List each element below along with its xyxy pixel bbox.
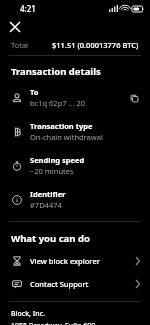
staticText: Identifier bbox=[30, 189, 66, 199]
button[interactable]: Transaction type bbox=[0, 118, 150, 145]
staticText: $11.51 (0.00013776 BTC) bbox=[52, 40, 139, 50]
staticText: Transaction details bbox=[11, 65, 101, 78]
staticText: Block, Inc. bbox=[11, 309, 46, 319]
staticText: bc1q 62p7 ... 20 bbox=[30, 98, 86, 108]
staticText: 4:21 bbox=[20, 3, 36, 14]
button[interactable]: View block explorer bbox=[0, 249, 150, 272]
button[interactable]: Close bbox=[5, 17, 25, 37]
staticText: ~20 minutes bbox=[30, 166, 74, 176]
staticText: Contact Support bbox=[30, 279, 89, 289]
button[interactable]: To bbox=[0, 84, 150, 111]
staticText: Total bbox=[11, 40, 29, 50]
staticText: Transaction type bbox=[30, 121, 93, 131]
staticText: To bbox=[30, 87, 39, 97]
button[interactable]: Sending speed bbox=[0, 152, 150, 179]
staticText: On-chain withdrawal bbox=[30, 132, 103, 142]
button[interactable]: Copy bbox=[127, 91, 141, 105]
staticText: Sending speed bbox=[30, 155, 85, 165]
staticText: #7D4474 bbox=[30, 200, 62, 210]
button[interactable]: Identifier bbox=[0, 186, 150, 213]
staticText: 1955 Broadway, Suite 600 bbox=[11, 321, 96, 325]
staticText: View block explorer bbox=[30, 256, 100, 266]
staticText: What you can do bbox=[11, 232, 90, 245]
button[interactable]: Contact Support bbox=[0, 272, 150, 295]
